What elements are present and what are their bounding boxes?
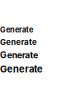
staticText: Generate — [0, 25, 33, 34]
staticText: Generate — [0, 50, 38, 60]
staticText: Generate — [0, 37, 37, 47]
staticText: Generate — [0, 63, 43, 75]
